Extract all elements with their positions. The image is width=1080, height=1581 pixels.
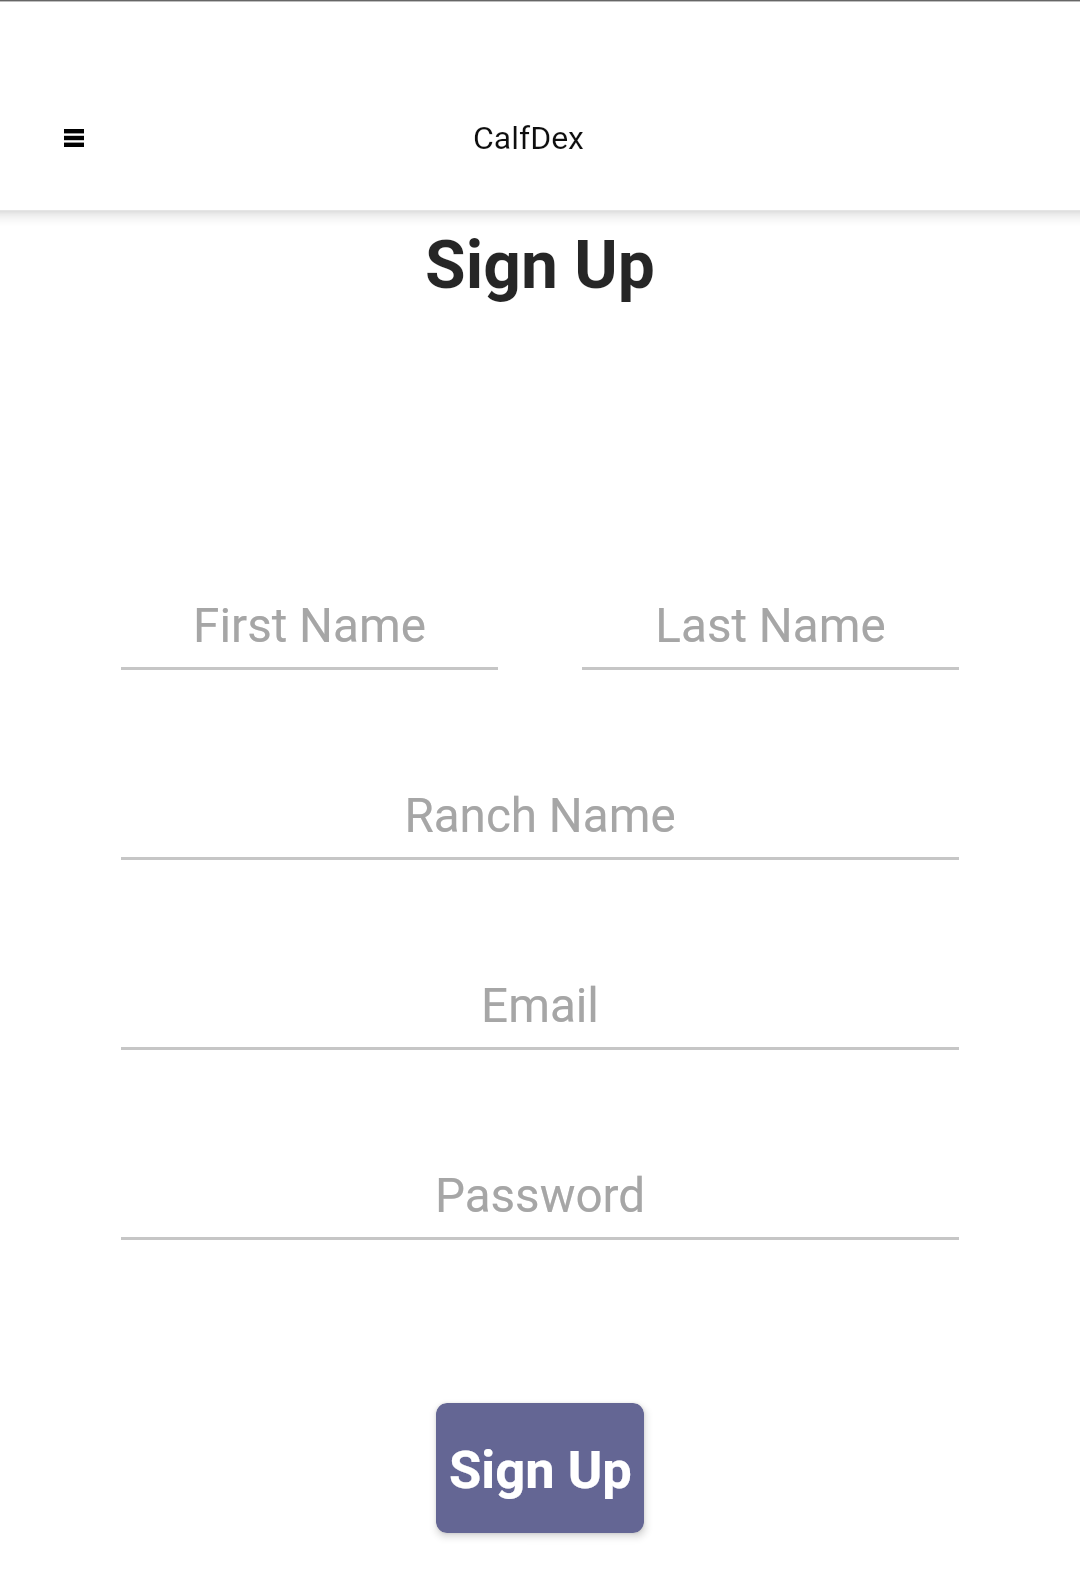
button[interactable]: Sign Up <box>436 1403 644 1533</box>
button[interactable]: Last Name <box>582 597 959 670</box>
button[interactable]: Email <box>121 977 959 1050</box>
button[interactable]: First Name <box>121 597 498 670</box>
staticText: First Name <box>121 598 498 654</box>
staticText: Last Name <box>582 598 959 654</box>
button[interactable]: Ranch Name <box>121 787 959 860</box>
staticText: Ranch Name <box>121 788 959 844</box>
staticText: Password <box>121 1168 959 1224</box>
button[interactable]: Password <box>121 1167 959 1240</box>
button[interactable]: Open navigation menu <box>44 108 104 168</box>
staticText: Sign Up <box>0 227 1080 304</box>
staticText: Sign Up <box>449 1439 632 1501</box>
staticText: CalfDex <box>473 119 584 157</box>
staticText: Email <box>121 978 959 1034</box>
